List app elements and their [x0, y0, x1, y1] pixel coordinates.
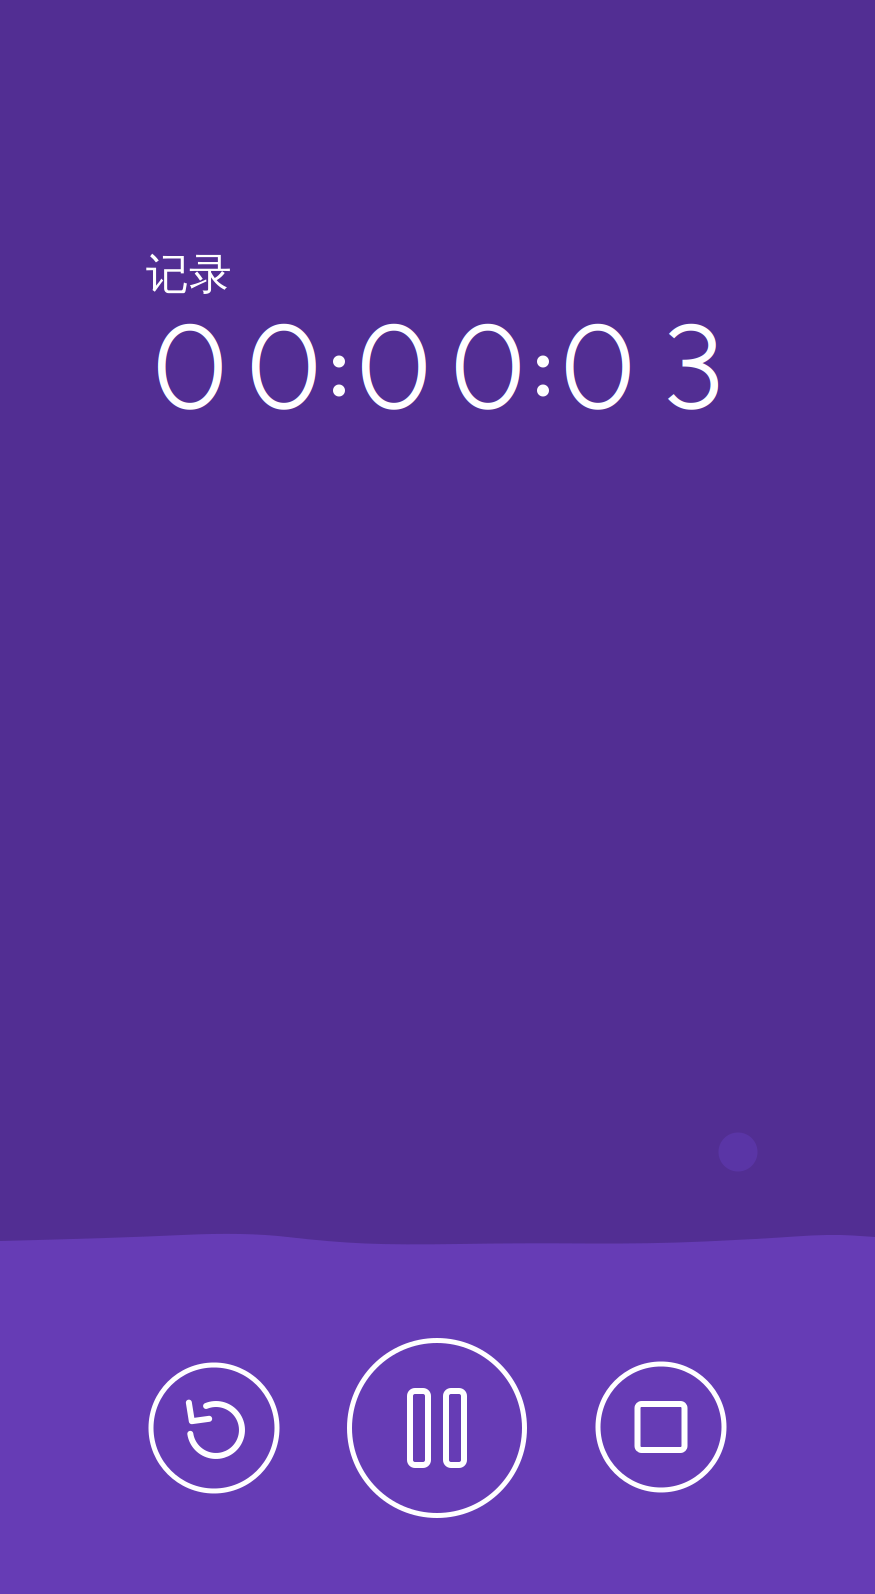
staticText: 0: [152, 296, 228, 438]
button[interactable]: Rewind: [148, 1362, 279, 1493]
button[interactable]: Stop: [595, 1361, 726, 1492]
staticText: 0: [450, 296, 526, 438]
staticText: 0: [356, 296, 432, 438]
staticText: 0: [246, 296, 322, 438]
button[interactable]: Pause: [347, 1338, 527, 1518]
staticText: 0: [560, 296, 636, 438]
staticText: 3: [660, 296, 724, 438]
staticText: 记录: [146, 248, 232, 300]
